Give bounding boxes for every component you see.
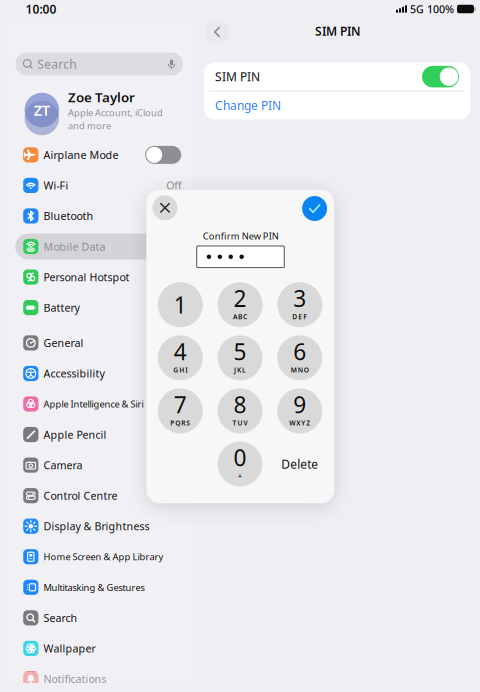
button[interactable]: 9 xyxy=(277,388,322,433)
button[interactable]: 6 xyxy=(277,335,322,380)
button[interactable]: Home Screen & App Library xyxy=(15,544,183,570)
staticText: 5G xyxy=(410,2,424,16)
staticText: 3 xyxy=(293,283,306,313)
button[interactable]: Delete xyxy=(276,441,324,486)
button[interactable]: Close xyxy=(152,195,177,220)
staticText: 8 xyxy=(234,389,247,419)
staticText: W X Y Z xyxy=(289,418,310,427)
staticText: Mobile Data xyxy=(43,239,105,254)
button[interactable]: Apple Intelligence & Siri xyxy=(15,391,183,417)
staticText: Notifications xyxy=(43,672,106,686)
staticText: D E F xyxy=(292,312,307,321)
button[interactable]: Confirm xyxy=(302,196,327,221)
staticText: Accessibility xyxy=(43,366,104,381)
staticText: M N O xyxy=(291,365,309,374)
staticText: 100% xyxy=(427,2,454,16)
button[interactable]: ZT xyxy=(6,90,192,130)
staticText: SIM PIN xyxy=(315,23,361,39)
staticText: Bluetooth xyxy=(43,209,93,223)
button[interactable]: General xyxy=(15,330,183,356)
staticText: Battery xyxy=(43,300,79,315)
staticText: Search xyxy=(43,611,77,625)
staticText: Display & Brightness xyxy=(43,519,149,533)
staticText: 1 xyxy=(174,290,187,320)
button[interactable]: 2 xyxy=(218,282,263,327)
button[interactable]: Bluetooth xyxy=(15,203,183,229)
button[interactable]: Back xyxy=(204,19,229,44)
button[interactable]: Notifications xyxy=(15,666,183,692)
staticText: 9 xyxy=(293,389,306,419)
button[interactable]: 3 xyxy=(277,282,322,327)
button[interactable]: Change PIN xyxy=(204,91,470,119)
staticText: Control Centre xyxy=(43,489,117,503)
button[interactable]: Search xyxy=(15,605,183,631)
staticText: Airplane Mode xyxy=(43,148,118,162)
button[interactable]: Mobile Data xyxy=(15,233,183,259)
staticText: 4 xyxy=(174,336,187,366)
staticText: Multitasking & Gestures xyxy=(43,581,144,593)
staticText: ZT xyxy=(34,100,50,120)
staticText: 2 xyxy=(234,283,247,313)
staticText: Search xyxy=(37,56,76,72)
staticText: SIM PIN xyxy=(215,69,260,85)
staticText: Wi-Fi xyxy=(43,178,68,192)
staticText: and more xyxy=(68,119,111,132)
staticText: Apple Intelligence & Siri xyxy=(43,398,143,410)
button[interactable]: Search xyxy=(15,52,183,76)
staticText: T U V xyxy=(233,418,248,427)
staticText: 0 xyxy=(234,442,247,473)
button[interactable]: Battery xyxy=(15,295,183,321)
button[interactable]: Wi-Fi xyxy=(15,172,183,198)
staticText: J K L xyxy=(234,365,246,374)
staticText: Zoe Taylor xyxy=(68,88,135,106)
button[interactable]: Airplane Mode xyxy=(15,142,183,168)
staticText: 7 xyxy=(174,389,187,419)
staticText: A B C xyxy=(233,312,247,321)
button[interactable]: 8 xyxy=(218,388,263,433)
staticText: 5 xyxy=(234,336,247,366)
staticText: Apple Account, iCloud xyxy=(68,106,163,119)
staticText: Apple Pencil xyxy=(43,427,106,442)
staticText: Delete xyxy=(281,456,318,472)
button[interactable]: Control Centre xyxy=(15,483,183,509)
button[interactable]: 5 xyxy=(218,335,263,380)
button[interactable]: 4 xyxy=(158,335,203,380)
button[interactable]: Apple Pencil xyxy=(15,421,183,447)
button[interactable]: Wallpaper xyxy=(15,635,183,661)
staticText: 10:00 xyxy=(25,1,56,17)
staticText: General xyxy=(43,336,83,350)
button[interactable]: 0 xyxy=(218,441,263,486)
staticText: P Q R S xyxy=(170,418,190,427)
button[interactable]: Camera xyxy=(15,452,183,478)
button[interactable]: 1 xyxy=(158,282,203,327)
staticText: G H I xyxy=(173,365,187,374)
button[interactable]: Display & Brightness xyxy=(15,513,183,539)
staticText: Home Screen & App Library xyxy=(43,551,163,563)
staticText: Camera xyxy=(43,458,82,472)
staticText: Off xyxy=(166,178,181,192)
staticText: 6 xyxy=(293,336,306,366)
button[interactable]: SIM PIN xyxy=(204,63,470,91)
button[interactable]: Accessibility xyxy=(15,360,183,386)
button[interactable]: Personal Hotspot xyxy=(15,264,183,290)
button[interactable]: 7 xyxy=(158,388,203,433)
staticText: Change PIN xyxy=(215,97,281,113)
staticText: Personal Hotspot xyxy=(43,270,129,284)
staticText: Wallpaper xyxy=(43,641,95,655)
staticText: + xyxy=(238,472,242,480)
staticText: Confirm New PIN xyxy=(203,230,279,242)
button[interactable]: Multitasking & Gestures xyxy=(15,574,183,600)
